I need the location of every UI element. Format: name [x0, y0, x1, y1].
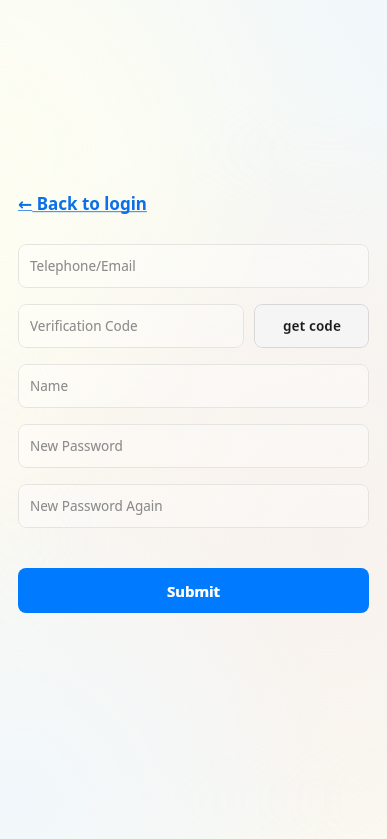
button[interactable]: New Password Again [18, 484, 369, 528]
staticText: Verification Code [30, 317, 138, 335]
button[interactable]: get code [254, 304, 369, 348]
staticText: Name [30, 377, 69, 395]
staticText: New Password [30, 437, 123, 455]
button[interactable]: Submit [18, 568, 369, 613]
button[interactable]: New Password [18, 424, 369, 468]
button[interactable]: Verification Code [18, 304, 244, 348]
button[interactable]: Name [18, 364, 369, 408]
button[interactable]: Telephone/Email [18, 244, 369, 288]
staticText: get code [283, 317, 341, 335]
button[interactable]: ← Back to login [18, 190, 147, 217]
staticText: Telephone/Email [30, 257, 136, 275]
staticText: ← Back to login [18, 192, 147, 215]
staticText: Submit [167, 581, 221, 601]
staticText: New Password Again [30, 497, 163, 515]
